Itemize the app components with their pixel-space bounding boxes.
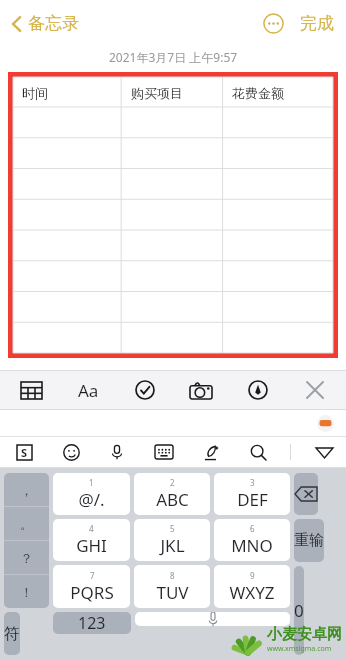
button[interactable]: 重输	[294, 519, 324, 562]
staticText: 花费金额	[232, 85, 284, 101]
staticText: ！	[20, 584, 33, 600]
staticText: ，	[20, 482, 33, 498]
staticText: 2	[170, 477, 175, 488]
button[interactable]: ！	[4, 575, 49, 608]
button[interactable]: 7	[53, 565, 130, 608]
staticText: 。	[20, 516, 33, 532]
staticText: 7	[90, 570, 95, 581]
staticText: 购买项目	[131, 85, 183, 101]
button[interactable]: Search	[244, 438, 272, 466]
button[interactable]: Voice input	[103, 438, 131, 466]
button[interactable]: More options	[256, 6, 290, 40]
staticText: 9	[250, 570, 255, 581]
staticText: TUV	[156, 581, 189, 604]
button[interactable]: 123	[53, 612, 131, 634]
button[interactable]: Voice input	[135, 612, 290, 626]
staticText: 5	[170, 523, 175, 534]
staticText: 4	[89, 523, 94, 534]
button[interactable]: ？	[4, 541, 49, 574]
button[interactable]: Collapse keyboard	[310, 438, 338, 466]
staticText: 3	[250, 477, 255, 488]
button[interactable]: Keyboard layout	[150, 438, 178, 466]
button[interactable]: Markup	[241, 373, 275, 407]
staticText: 123	[78, 612, 106, 634]
staticText: 备忘录	[28, 13, 79, 34]
staticText: 0	[294, 599, 304, 622]
button[interactable]: Sogou logo	[10, 438, 38, 466]
button[interactable]: 5	[134, 519, 210, 561]
staticText: DEF	[237, 488, 268, 511]
button[interactable]: Close	[298, 373, 332, 407]
button[interactable]: 1	[53, 473, 130, 515]
button[interactable]: 4	[53, 519, 130, 561]
button[interactable]: 9	[214, 565, 290, 608]
staticText: 重输	[294, 531, 324, 550]
button[interactable]: 2	[134, 473, 210, 515]
button[interactable]: Sticker	[317, 415, 334, 432]
staticText: 6	[250, 523, 255, 534]
button[interactable]: 完成	[296, 7, 338, 40]
button[interactable]: 符	[4, 612, 20, 655]
staticText: S	[21, 445, 28, 460]
button[interactable]: Camera	[184, 373, 218, 407]
button[interactable]: Emoji	[57, 438, 85, 466]
staticText: MNO	[231, 534, 273, 557]
button[interactable]: 0	[294, 566, 304, 655]
button[interactable]: 。	[4, 507, 49, 540]
button[interactable]: 6	[214, 519, 290, 561]
staticText: 8	[170, 570, 175, 581]
staticText: GHI	[76, 534, 107, 557]
staticText: @/.	[78, 488, 105, 511]
staticText: 小麦安卓网	[267, 625, 342, 644]
staticText: 1	[89, 477, 94, 488]
button[interactable]: 备忘录	[6, 9, 83, 38]
staticText: ABC	[156, 488, 189, 511]
staticText: Aa	[78, 379, 99, 402]
staticText: 符	[4, 624, 20, 644]
staticText: JKL	[160, 534, 185, 557]
staticText: ？	[20, 550, 33, 566]
button[interactable]: Checklist	[128, 373, 162, 407]
button[interactable]: Handwriting	[197, 438, 225, 466]
staticText: www.xmsigma.com	[267, 644, 332, 654]
button[interactable]: Table	[14, 373, 48, 407]
staticText: 2021年3月7日 上午9:57	[109, 49, 238, 65]
staticText: WXYZ	[229, 581, 275, 604]
staticText: PQRS	[70, 581, 114, 604]
button[interactable]: Text format	[71, 373, 105, 407]
button[interactable]: 8	[134, 565, 210, 608]
button[interactable]: ，	[4, 473, 49, 506]
staticText: 完成	[300, 13, 334, 34]
button[interactable]: Delete	[294, 473, 318, 515]
button[interactable]: 3	[214, 473, 290, 515]
staticText: 时间	[22, 85, 48, 101]
